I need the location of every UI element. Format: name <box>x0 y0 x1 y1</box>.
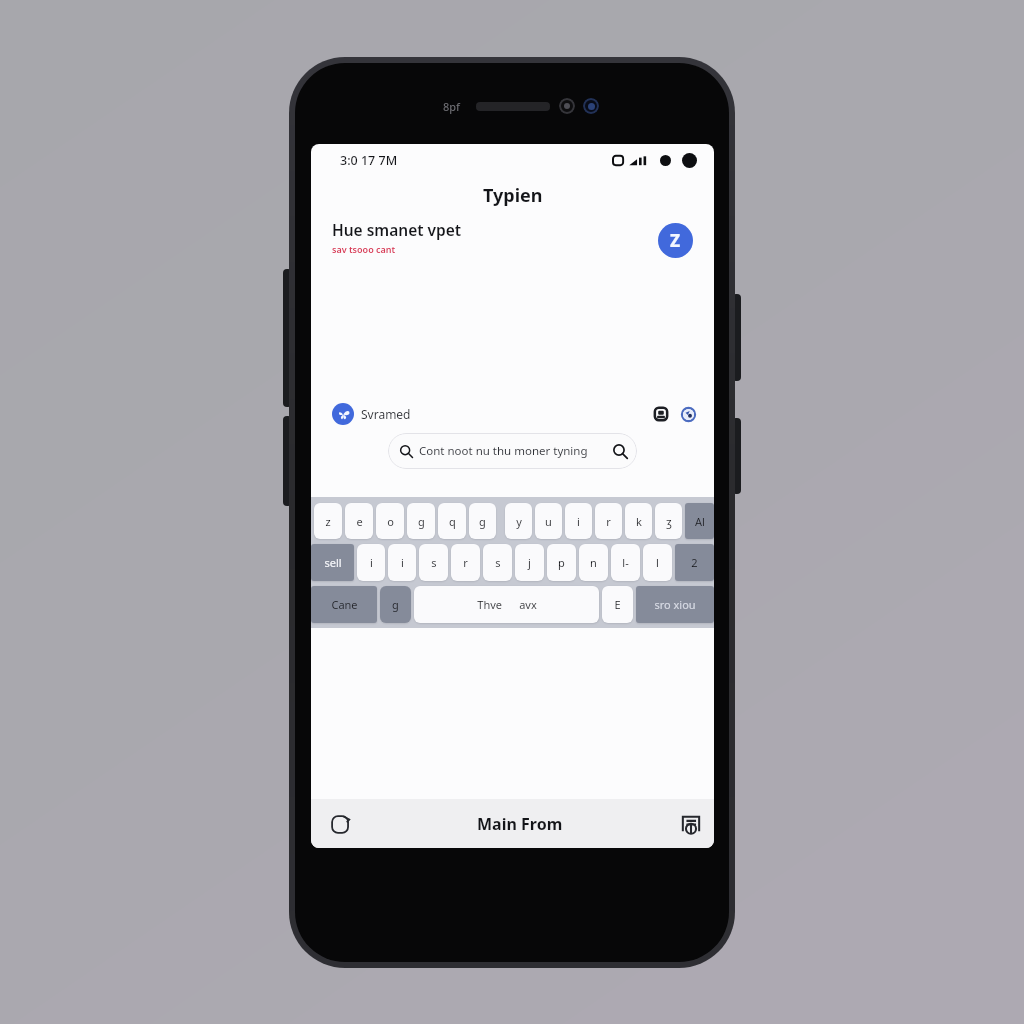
button[interactable]: l- <box>611 544 640 581</box>
button[interactable]: u <box>535 503 562 539</box>
staticText: r <box>606 514 611 529</box>
staticText: Svramed <box>361 406 411 422</box>
button[interactable]: n <box>579 544 608 581</box>
button[interactable]: l <box>643 544 672 581</box>
staticText: s <box>431 555 437 570</box>
button[interactable]: Screenshot <box>653 406 669 422</box>
button[interactable]: Messages <box>678 811 704 837</box>
staticText: Hue smanet vpet <box>332 219 462 240</box>
button[interactable]: e <box>345 503 373 539</box>
button[interactable]: sell <box>311 544 354 581</box>
staticText: r <box>463 555 468 570</box>
staticText: g <box>479 514 486 529</box>
button[interactable]: Thve avx <box>414 586 599 623</box>
staticText: i <box>370 555 373 570</box>
staticText: E <box>614 597 621 612</box>
button[interactable]: g <box>380 586 411 623</box>
staticText: sell <box>324 555 342 570</box>
button[interactable]: ʒ <box>655 503 682 539</box>
staticText: Thve avx <box>477 597 537 612</box>
staticText: s <box>495 555 501 570</box>
staticText: k <box>636 514 642 529</box>
staticText: Main From <box>477 813 563 835</box>
staticText: sav tsooo cant <box>332 243 396 255</box>
staticText: g <box>418 514 425 529</box>
button[interactable]: Al <box>685 503 714 539</box>
staticText: Cane <box>331 597 358 612</box>
button[interactable]: o <box>376 503 404 539</box>
button[interactable]: r <box>451 544 480 581</box>
staticText: z <box>325 514 331 529</box>
button[interactable]: E <box>602 586 633 623</box>
staticText: y <box>516 514 522 529</box>
staticText: 8pf <box>443 99 461 114</box>
staticText: n <box>590 555 597 570</box>
staticText: l- <box>622 555 629 570</box>
staticText: g <box>392 597 399 612</box>
button[interactable]: r <box>595 503 622 539</box>
button[interactable]: y <box>505 503 532 539</box>
staticText: p <box>558 555 565 570</box>
staticText: e <box>356 514 363 529</box>
staticText: Typien <box>483 183 543 207</box>
staticText: Al <box>695 514 705 529</box>
button[interactable]: k <box>625 503 652 539</box>
button[interactable]: Compose <box>658 223 693 258</box>
button[interactable]: Info <box>680 406 696 422</box>
staticText: i <box>401 555 404 570</box>
button[interactable]: q <box>438 503 466 539</box>
button[interactable]: g <box>407 503 435 539</box>
button[interactable]: p <box>547 544 576 581</box>
button[interactable]: Cont noot nu thu moner tyning <box>388 433 637 469</box>
staticText: j <box>528 555 531 570</box>
staticText: l <box>656 555 659 570</box>
staticText: u <box>545 514 552 529</box>
staticText: 2 <box>691 555 698 570</box>
staticText: q <box>449 514 456 529</box>
button[interactable]: i <box>357 544 385 581</box>
button[interactable]: sro xiou <box>636 586 714 623</box>
button[interactable]: i <box>565 503 592 539</box>
staticText: Z <box>670 229 681 252</box>
button[interactable]: Cane <box>311 586 377 623</box>
staticText: sro xiou <box>654 597 696 612</box>
button[interactable]: i <box>388 544 416 581</box>
button[interactable]: s <box>483 544 512 581</box>
button[interactable]: z <box>314 503 342 539</box>
button[interactable]: 2 <box>675 544 714 581</box>
staticText: i <box>577 514 580 529</box>
button[interactable]: s <box>419 544 448 581</box>
staticText: Cont noot nu thu moner tyning <box>419 443 588 459</box>
button[interactable]: j <box>515 544 544 581</box>
button[interactable]: Home <box>327 811 353 837</box>
staticText: o <box>387 514 394 529</box>
staticText: 3:0 17 7M <box>340 152 398 169</box>
staticText: ʒ <box>666 514 672 529</box>
button[interactable]: g <box>469 503 496 539</box>
